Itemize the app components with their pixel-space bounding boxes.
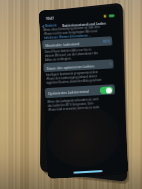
staticText: täglichen Routine, damit der Akku gescho… [46,78,102,85]
button[interactable]: Optimiertes Ladeterminal [45,84,115,98]
staticText: iPhone lädt erst weiter, wenn du es nutz… [48,105,100,112]
staticText: Dauer des optimierten Ladens [46,63,95,70]
staticText: hält diesen. Weitere Informationen … [44,33,91,40]
staticText: iPhone nur bis zum festgelegten Wert und [44,29,98,36]
staticText: Optimiertes Ladeterminal [48,89,89,95]
staticText: Intelligent bestimmte programmiert dein [46,70,99,77]
staticText: Wenn das Ladegerät verbunden ist, wird [47,97,98,104]
button[interactable]: Dauer des optimierten Ladens [43,59,114,72]
staticText: diesem Wert auf, um die Lebensdauer des [45,51,99,58]
staticText: Batterie [45,23,57,28]
staticText: 10:47 [46,16,55,21]
button[interactable]: Maximaler Ladestand [42,36,112,49]
staticText: Wenn diese Einstellung aktiviert ist, lä… [43,25,100,32]
button[interactable]: Zurück zu Batterie [42,23,57,28]
button[interactable]: Optimiertes Laden Schalter [100,86,113,94]
staticText: Batteriezustand und Laden [62,21,106,27]
staticText: das Laden bis 80 % fortgesetzt. Dein [48,101,94,108]
staticText: Akkus zu verlängern. [45,57,72,62]
staticText: Maximaler Ladestand [45,41,80,47]
staticText: Dein iPhone lädt den Akku nur bis zu [45,47,92,54]
staticText: iPhone den Ladevorgang anhand deiner [46,74,97,81]
staticText: 80 % [103,39,110,44]
